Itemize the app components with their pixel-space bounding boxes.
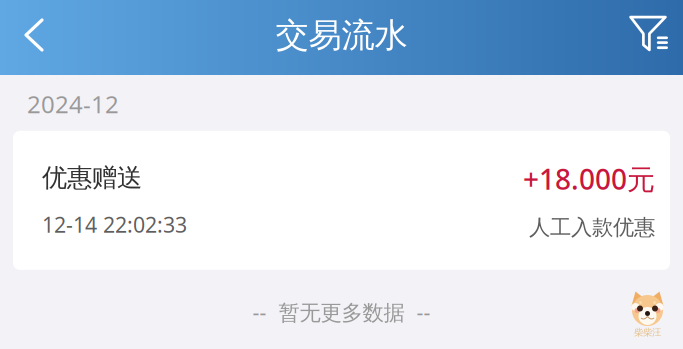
staticText: +18.000元	[523, 160, 655, 197]
staticText: 柴柴汪	[634, 327, 661, 338]
staticText: 12-14 22:02:33	[42, 210, 187, 239]
button[interactable]: 优惠赠送	[13, 131, 670, 270]
staticText: 2024-12	[27, 88, 119, 120]
staticText: 人工入款优惠	[529, 214, 655, 241]
staticText: -- 暂无更多数据 --	[252, 298, 430, 326]
staticText: 交易流水	[275, 15, 407, 56]
button[interactable]: Back	[0, 0, 68, 75]
button[interactable]: Filter	[617, 0, 683, 75]
button[interactable]: Mascot	[628, 290, 667, 338]
staticText: 优惠赠送	[42, 162, 142, 193]
